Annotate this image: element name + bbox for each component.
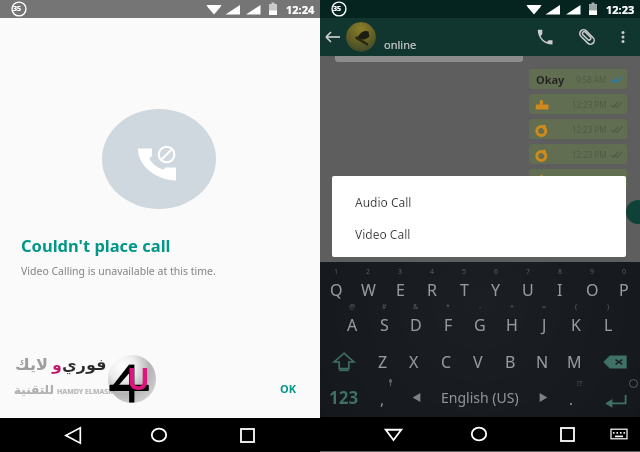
button[interactable]: 123 [320, 376, 368, 417]
button[interactable]: ( [560, 300, 592, 338]
button[interactable]: Enter [592, 376, 640, 417]
button[interactable]: & [400, 300, 432, 338]
staticText: + [510, 302, 515, 312]
button[interactable]: 12:23 PM [529, 94, 627, 114]
button[interactable]: 12:23 PM [529, 169, 627, 189]
button[interactable]: = [528, 300, 560, 338]
staticText: Audio Call [355, 194, 412, 210]
button[interactable]: M [558, 338, 590, 376]
button[interactable]: + [496, 300, 528, 338]
button[interactable]: - [464, 300, 496, 338]
staticText: C [441, 351, 452, 373]
staticText: Z [378, 351, 388, 373]
staticText: 12:24 [286, 2, 315, 17]
button[interactable]: * [432, 300, 464, 338]
button[interactable]: N [526, 338, 558, 376]
button[interactable]: Change keyboard [608, 423, 630, 445]
button[interactable]: C [430, 338, 462, 376]
staticText: Y [491, 279, 501, 301]
button[interactable]: 8 [544, 262, 576, 300]
button[interactable]: B [494, 338, 526, 376]
button[interactable]: Video Call [332, 218, 626, 250]
staticText: Video Call [355, 226, 411, 242]
staticText: 12:23 PM [572, 99, 607, 110]
staticText: . [569, 389, 574, 409]
button[interactable]: X [398, 338, 430, 376]
button[interactable]: @ [336, 300, 368, 338]
button[interactable]: Audio Call [332, 186, 626, 218]
staticText: T [460, 279, 469, 301]
staticText: @ [349, 302, 356, 312]
button[interactable]: 3 [384, 262, 416, 300]
staticText: P [619, 279, 629, 301]
staticText: Okay [536, 72, 565, 87]
staticText: 0 [622, 267, 627, 277]
staticText: X [409, 351, 419, 373]
button[interactable]: . [556, 376, 592, 417]
button[interactable]: 12:23 PM [529, 144, 627, 164]
staticText: 7 [526, 267, 531, 277]
staticText: R [427, 279, 437, 301]
staticText: K [571, 314, 581, 336]
staticText: O [586, 279, 599, 301]
staticText: G [474, 314, 486, 336]
button[interactable]: Shift [320, 338, 367, 376]
button[interactable]: Contact photo [346, 22, 376, 52]
button[interactable]: 0 [608, 262, 640, 300]
button[interactable]: 6 [480, 262, 512, 300]
button[interactable]: Back [320, 24, 346, 50]
staticText: 1 [334, 267, 339, 277]
staticText: B [505, 351, 516, 373]
staticText: U [127, 358, 150, 399]
staticText: 12:23 [606, 2, 635, 17]
button[interactable]: 5 [448, 262, 480, 300]
button[interactable]: English (US) [429, 376, 531, 417]
staticText: # [382, 302, 387, 312]
staticText: online [384, 37, 417, 52]
staticText: !? [577, 379, 582, 389]
staticText: 4 [430, 267, 435, 277]
staticText: للتقنية [14, 383, 55, 397]
button[interactable]: Okay [529, 69, 627, 89]
staticText: & [413, 302, 419, 312]
staticText: Video Calling is unavailable at this tim… [21, 264, 216, 278]
staticText: 5 [462, 267, 467, 277]
button[interactable]: Recents [552, 419, 582, 449]
button[interactable]: 1 [320, 262, 352, 300]
button[interactable]: Attach [572, 22, 602, 52]
staticText: H [506, 314, 518, 336]
button[interactable]: Call [530, 22, 560, 52]
staticText: ( [575, 302, 578, 312]
button[interactable]: 7 [512, 262, 544, 300]
staticText: 9:58 AM [576, 74, 607, 85]
button[interactable]: Previous language [404, 376, 429, 417]
button[interactable]: Backspace [590, 338, 640, 376]
button[interactable]: 12:23 PM [529, 119, 627, 139]
button[interactable]: V [462, 338, 494, 376]
button[interactable]: OK [274, 377, 303, 400]
button[interactable]: Hide keyboard [378, 419, 408, 449]
button[interactable]: More options [610, 24, 636, 50]
button[interactable]: # [368, 300, 400, 338]
button[interactable]: ) [592, 300, 624, 338]
button[interactable]: , [368, 376, 404, 417]
staticText: , [380, 389, 385, 409]
staticText: 12:23 PM [572, 149, 607, 160]
button[interactable]: 9 [576, 262, 608, 300]
staticText: 35 [13, 4, 22, 14]
button[interactable]: Z [367, 338, 398, 376]
staticText: E [396, 279, 405, 301]
button[interactable]: 4 [416, 262, 448, 300]
staticText: L [604, 314, 613, 336]
button[interactable]: 2 [352, 262, 384, 300]
staticText: - [479, 302, 482, 312]
button[interactable]: Back [58, 420, 88, 450]
staticText: و [52, 355, 62, 374]
button[interactable]: Recents [232, 420, 262, 450]
staticText: 12:23 PM [572, 124, 607, 135]
staticText: D [410, 314, 422, 336]
staticText: W [361, 279, 376, 301]
button[interactable]: Home [144, 420, 174, 450]
button[interactable]: Next language [531, 376, 556, 417]
button[interactable]: Home [464, 419, 494, 449]
